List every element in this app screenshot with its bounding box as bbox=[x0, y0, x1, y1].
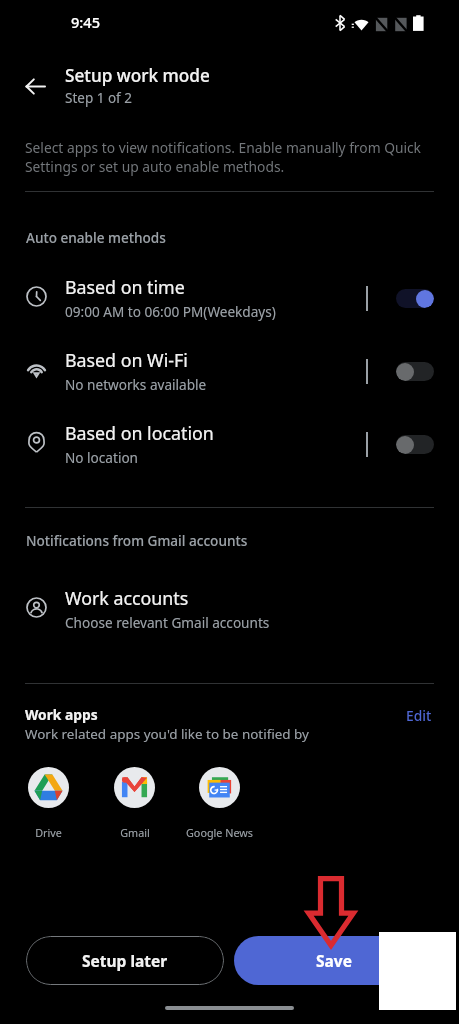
staticText: Drive bbox=[35, 825, 62, 840]
button[interactable]: Based on time bbox=[396, 289, 434, 308]
button[interactable]: Gmail bbox=[79, 767, 189, 840]
button[interactable]: Drive bbox=[0, 767, 103, 840]
staticText: 09:00 AM to 06:00 PM(Weekdays) bbox=[65, 302, 276, 321]
staticText: Gmail bbox=[120, 825, 150, 840]
staticText: Based on Wi-Fi bbox=[65, 348, 188, 372]
button[interactable]: Back bbox=[17, 68, 54, 105]
button[interactable]: Setup later bbox=[26, 936, 224, 985]
staticText: Notifications from Gmail accounts bbox=[26, 531, 248, 550]
staticText: Save bbox=[316, 950, 352, 971]
button[interactable]: Based on Wi-Fi bbox=[396, 362, 434, 381]
staticText: Google News bbox=[186, 825, 253, 840]
button[interactable]: Google News bbox=[164, 767, 274, 840]
staticText: No networks available bbox=[65, 375, 207, 394]
staticText: Choose relevant Gmail accounts bbox=[65, 613, 270, 632]
button[interactable]: Based on location bbox=[0, 413, 459, 475]
button[interactable]: Work accounts bbox=[0, 578, 459, 640]
staticText: Select apps to view notifications. Enabl… bbox=[25, 138, 423, 176]
staticText: Auto enable methods bbox=[26, 228, 166, 247]
staticText: No location bbox=[65, 448, 139, 467]
staticText: Work related apps you'd like to be notif… bbox=[25, 725, 309, 743]
button[interactable]: Edit bbox=[406, 706, 432, 725]
staticText: Work apps bbox=[25, 705, 98, 724]
button[interactable]: Based on location bbox=[396, 435, 434, 454]
staticText: Setup work mode bbox=[65, 64, 210, 87]
button[interactable]: Based on time bbox=[0, 267, 459, 329]
staticText: Based on location bbox=[65, 421, 214, 445]
staticText: Setup later bbox=[82, 950, 168, 971]
staticText: 9:45 bbox=[71, 12, 101, 32]
button[interactable]: Save bbox=[234, 936, 434, 985]
staticText: Based on time bbox=[65, 275, 185, 299]
button[interactable]: Based on Wi-Fi bbox=[0, 340, 459, 402]
staticText: Edit bbox=[406, 706, 432, 725]
staticText: Step 1 of 2 bbox=[65, 89, 132, 107]
staticText: Work accounts bbox=[65, 586, 189, 610]
